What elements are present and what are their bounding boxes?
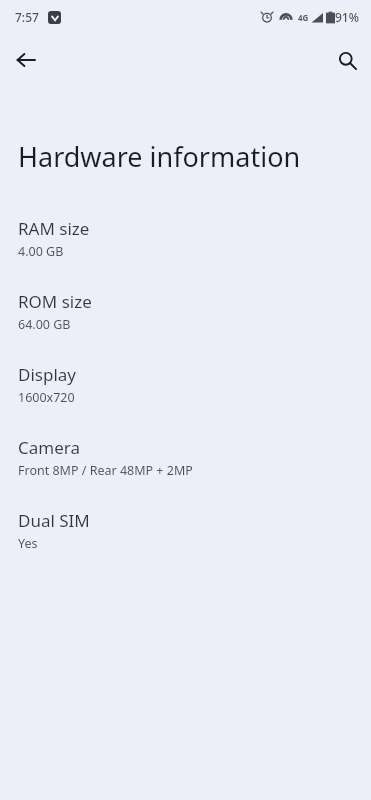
staticText: 64.00 GB <box>18 316 71 333</box>
button[interactable]: Camera <box>0 434 371 507</box>
staticText: 4G <box>298 12 309 23</box>
staticText: ROM size <box>18 290 92 313</box>
button[interactable]: Search <box>329 42 365 78</box>
staticText: Camera <box>18 436 80 459</box>
staticText: 1600x720 <box>18 389 75 406</box>
button[interactable]: Display <box>0 361 371 434</box>
staticText: 7:57 <box>15 9 39 25</box>
staticText: 4.00 GB <box>18 243 64 260</box>
staticText: Display <box>18 363 76 386</box>
button[interactable]: RAM size <box>0 215 371 288</box>
staticText: RAM size <box>18 217 90 240</box>
staticText: 91% <box>335 9 359 25</box>
staticText: Front 8MP / Rear 48MP + 2MP <box>18 462 193 479</box>
staticText: Yes <box>18 535 38 552</box>
button[interactable]: ROM size <box>0 288 371 361</box>
button[interactable]: Dual SIM <box>0 507 371 580</box>
staticText: Dual SIM <box>18 509 90 532</box>
button[interactable]: Back <box>8 42 44 78</box>
staticText: Hardware information <box>18 138 301 175</box>
